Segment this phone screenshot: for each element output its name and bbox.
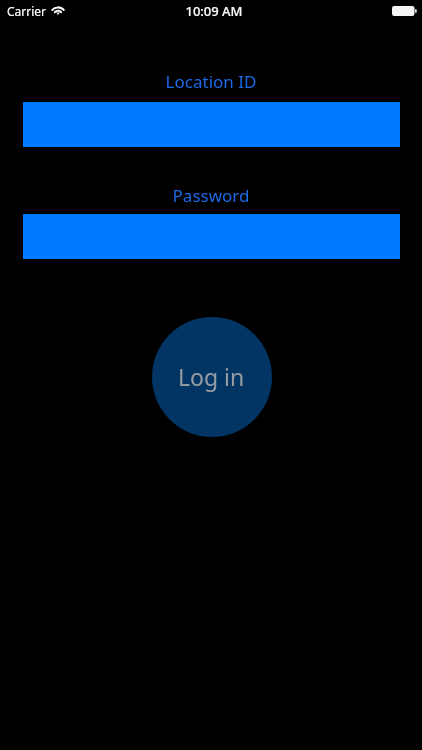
staticText: Log in [178, 361, 245, 392]
staticText: Carrier [7, 3, 47, 19]
button[interactable]: Log in [152, 317, 272, 437]
staticText: 10:09 AM [3, 2, 422, 20]
staticText: Password [0, 184, 422, 207]
staticText: Location ID [0, 70, 422, 93]
